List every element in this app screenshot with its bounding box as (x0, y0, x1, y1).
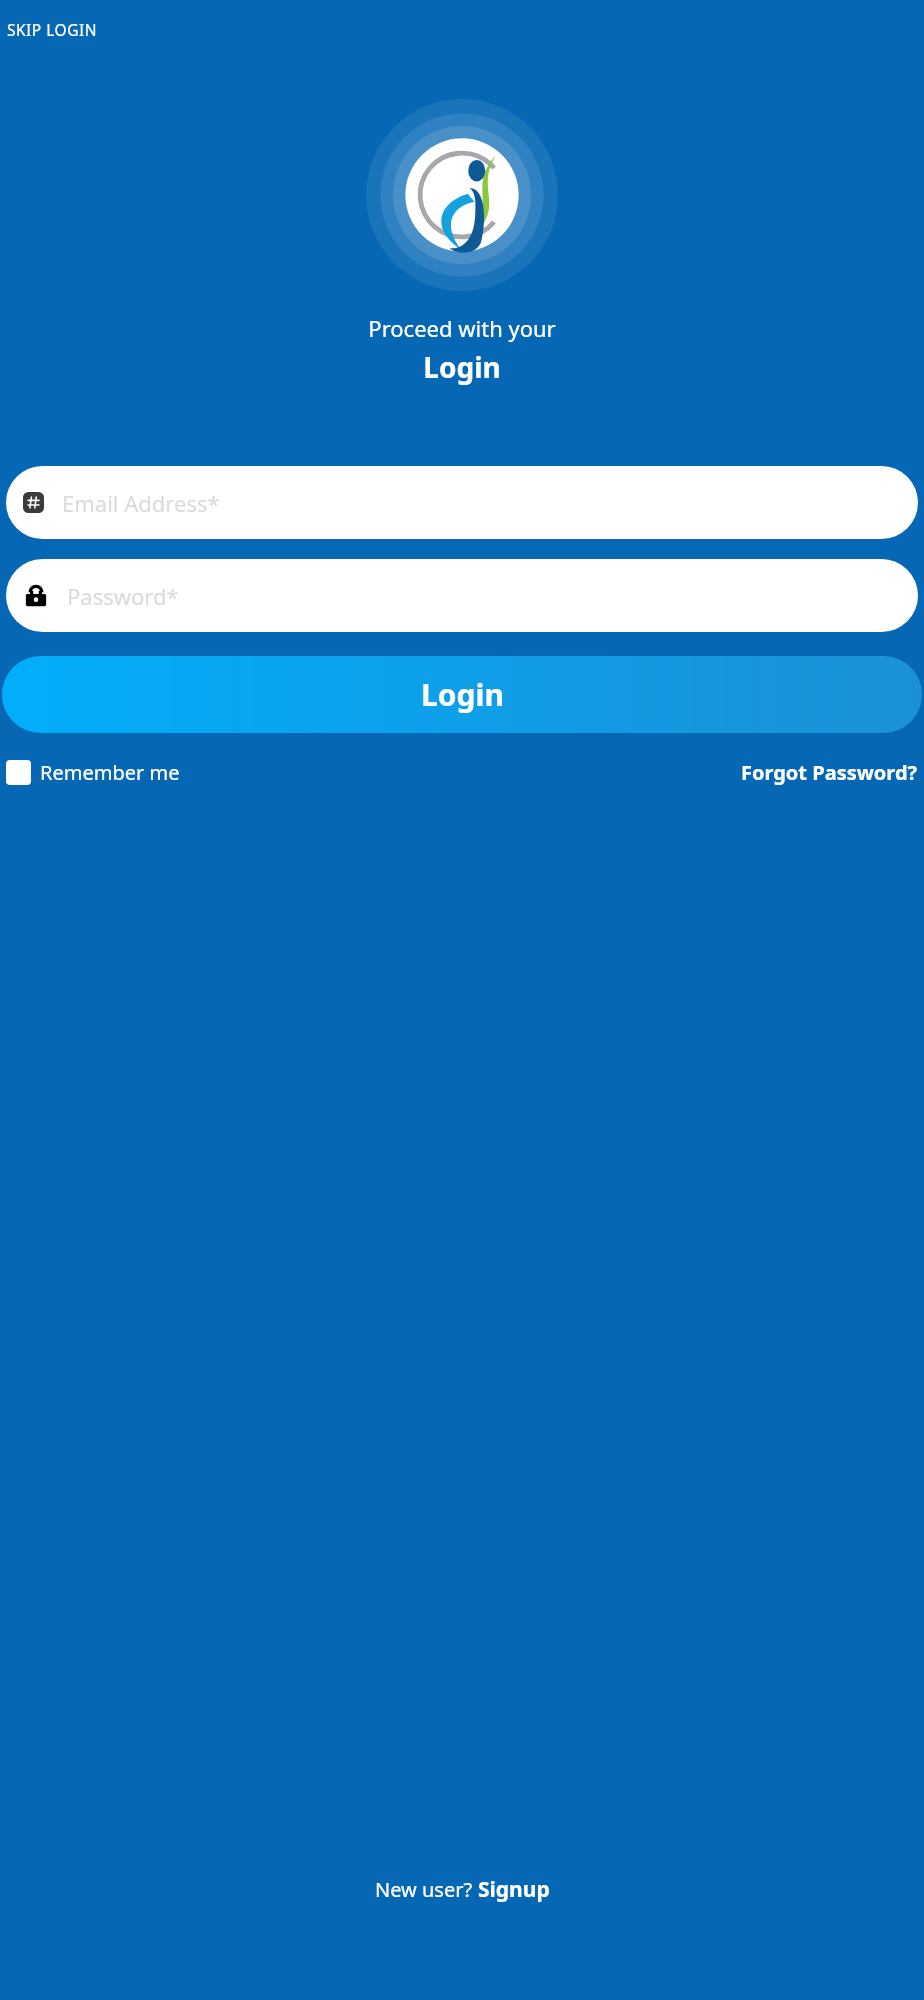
staticText: SKIP LOGIN (7, 19, 98, 40)
staticText: Login (421, 674, 504, 715)
staticText: Login (0, 348, 924, 386)
staticText: Remember me (40, 759, 180, 786)
other: Password (23, 583, 49, 609)
button[interactable]: Email Address (6, 466, 918, 539)
button[interactable]: SKIP LOGIN (0, 12, 105, 47)
staticText: Proceed with your (0, 313, 924, 343)
staticText: Signup (478, 1875, 550, 1904)
button[interactable]: Signup (478, 1875, 550, 1904)
button[interactable]: Remember me (6, 759, 180, 786)
staticText: New user? (375, 1876, 478, 1903)
button[interactable]: Password (6, 559, 918, 632)
staticText: Password* (67, 581, 179, 611)
button[interactable]: Forgot Password? (741, 759, 918, 786)
staticText: Email Address* (62, 488, 220, 518)
button[interactable]: Login (2, 656, 922, 733)
other: Email Address (23, 492, 44, 513)
staticText: Forgot Password? (741, 759, 918, 786)
